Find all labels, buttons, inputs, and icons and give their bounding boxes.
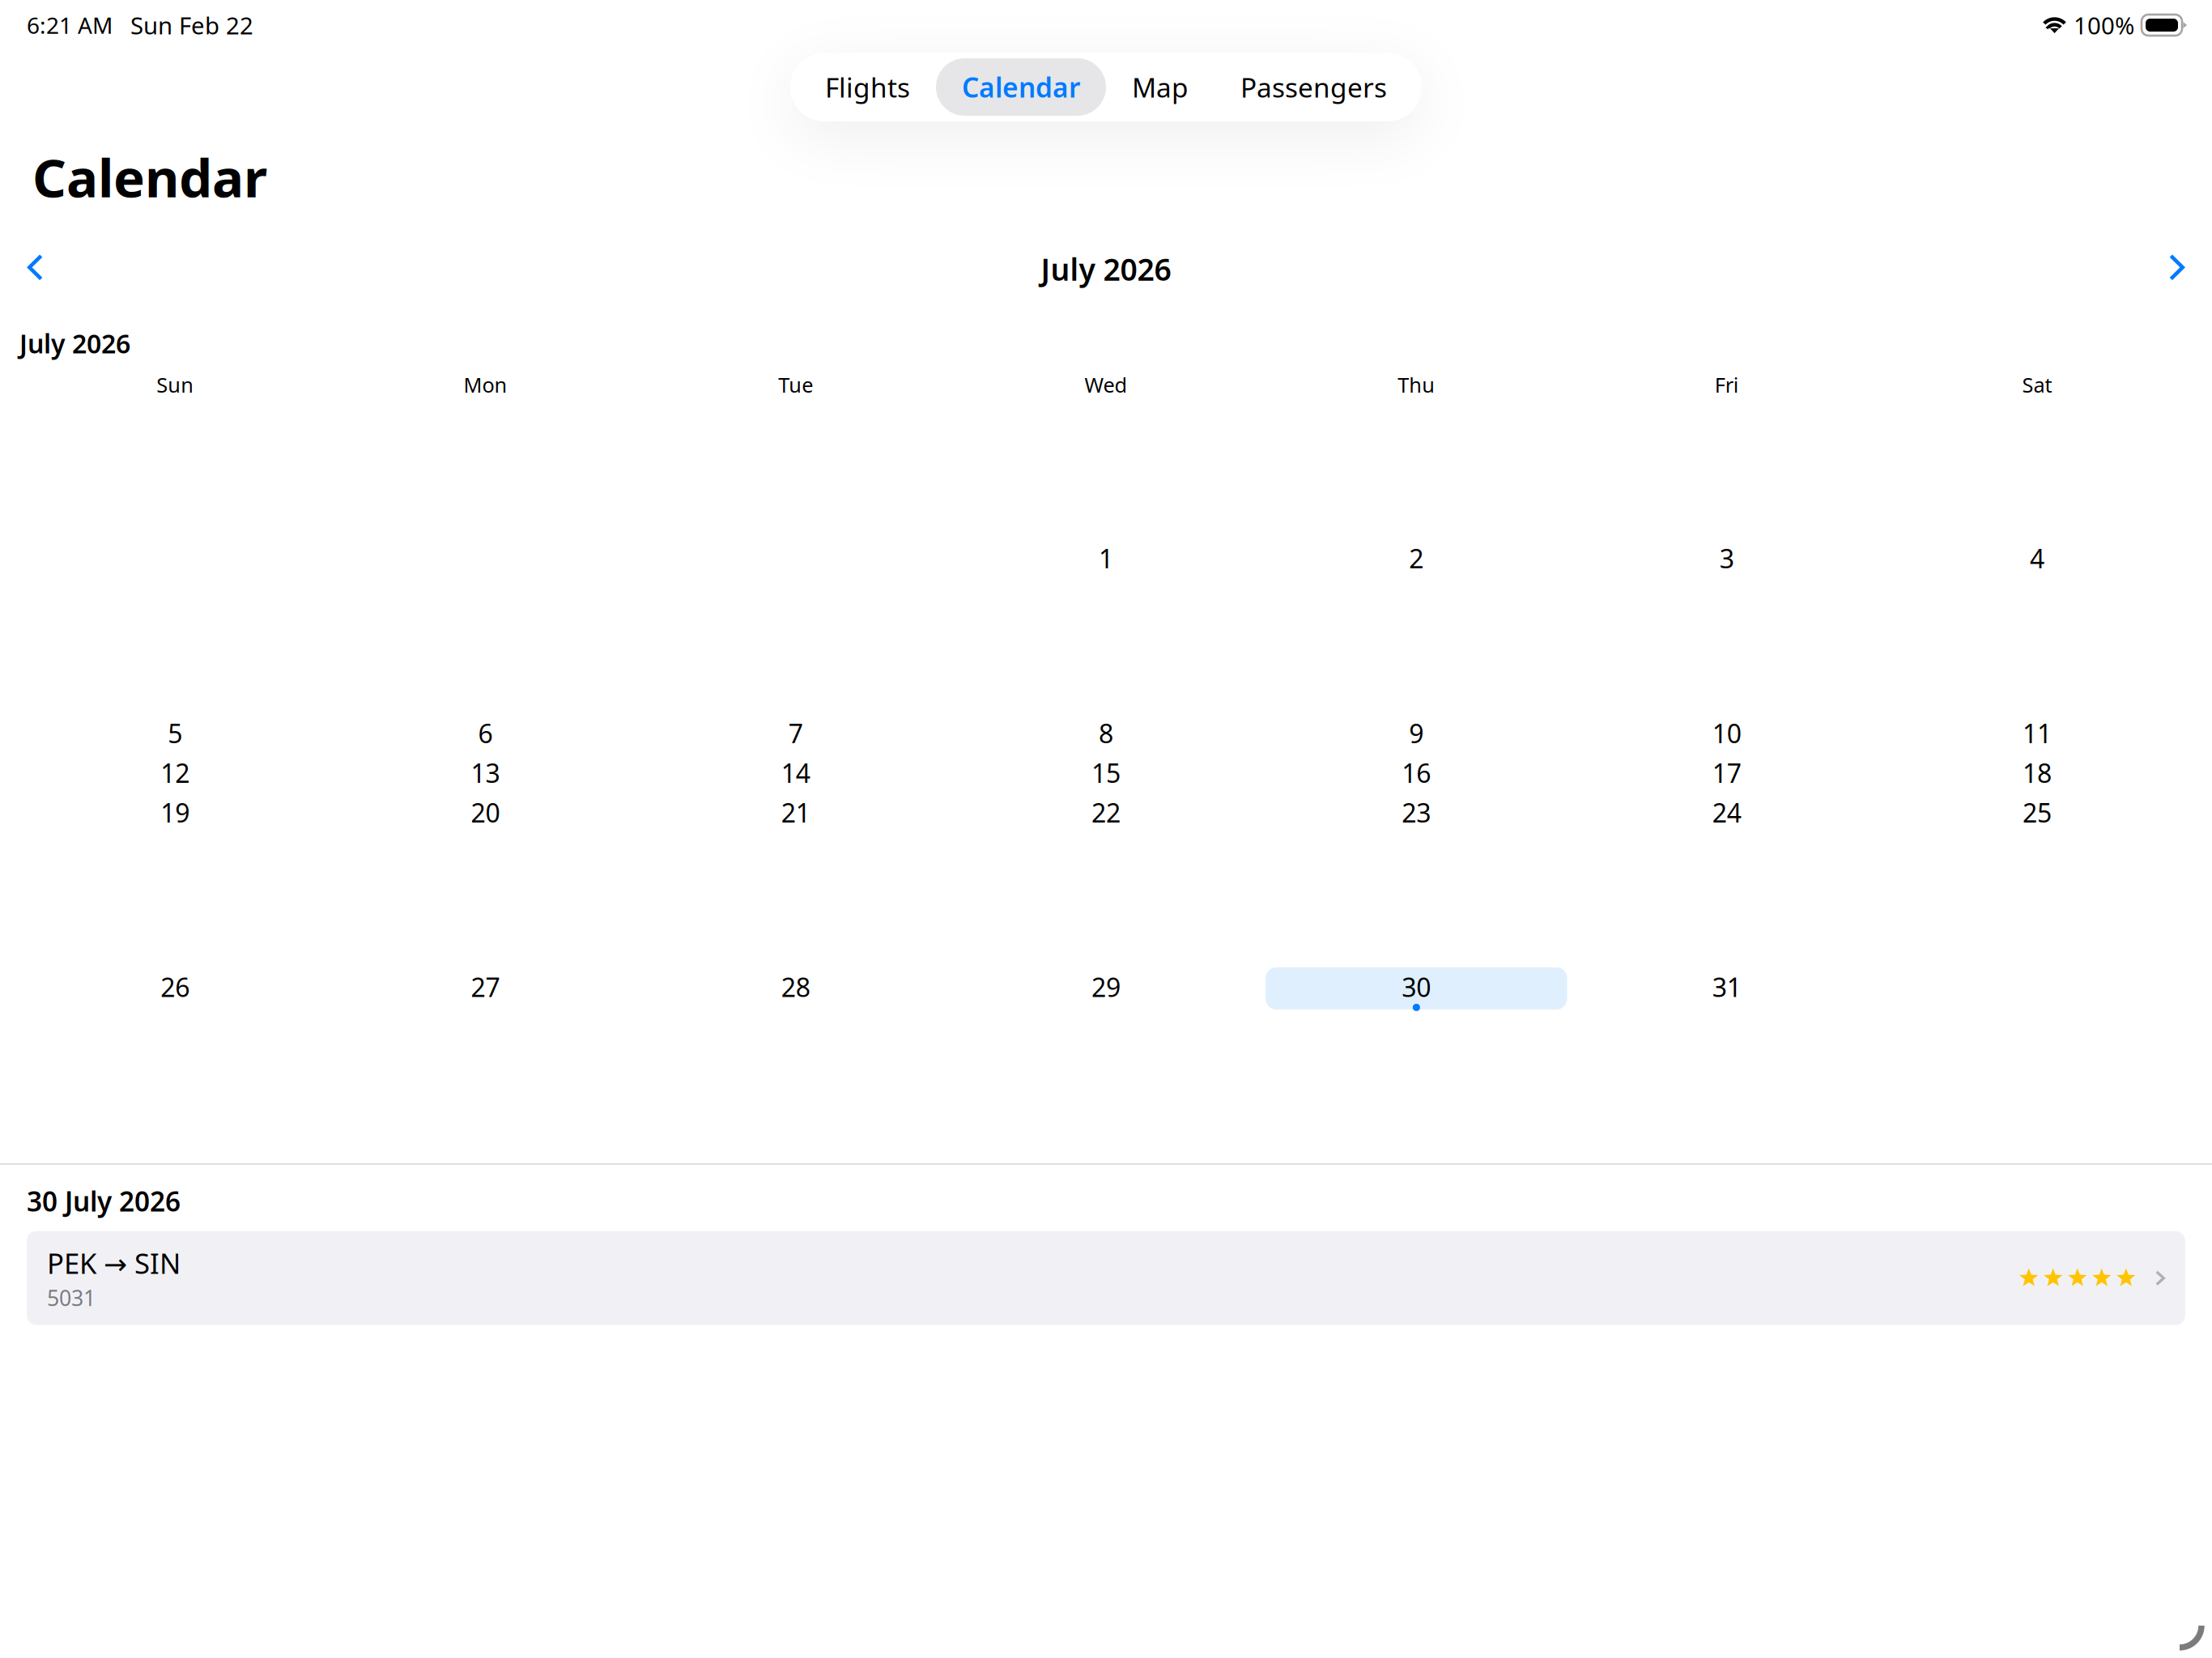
button[interactable]: 9 (1261, 714, 1572, 756)
button[interactable]: 15 (951, 753, 1261, 795)
button[interactable]: 12 (20, 753, 330, 795)
staticText: July 2026 (1041, 249, 1171, 289)
staticText: 1 (1099, 541, 1113, 576)
staticText: 6 (478, 716, 493, 750)
staticText: 15 (1092, 756, 1121, 790)
button[interactable]: 22 (951, 793, 1261, 835)
staticText: 24 (1712, 795, 1741, 830)
staticText: 20 (471, 795, 500, 830)
staticText: 30 (1402, 970, 1431, 1004)
staticText: Calendar (962, 69, 1080, 105)
staticText: 11 (2023, 716, 2052, 750)
button[interactable]: 20 (330, 793, 641, 835)
button[interactable]: 16 (1261, 753, 1572, 795)
staticText: 14 (781, 756, 810, 790)
staticText: 19 (160, 795, 190, 830)
button[interactable]: Passengers (1214, 58, 1413, 116)
button[interactable]: Previous month (7, 238, 63, 300)
button[interactable]: 19 (20, 793, 330, 835)
button[interactable]: 11 (1882, 714, 2192, 756)
button[interactable]: 27 (330, 967, 641, 1009)
staticText: 6:21 AM (27, 10, 113, 40)
staticText: 17 (1712, 756, 1741, 790)
button[interactable]: 18 (1882, 753, 2192, 795)
staticText: 28 (781, 970, 810, 1004)
button[interactable]: 30 (1261, 967, 1572, 1009)
button[interactable]: 3 (1572, 539, 1882, 581)
button[interactable]: 4 (1882, 539, 2192, 581)
staticText: 3 (1719, 541, 1734, 576)
button[interactable]: 5 (20, 714, 330, 756)
staticText: Fri (1715, 371, 1739, 398)
staticText: Tue (778, 371, 813, 398)
staticText: 10 (1712, 716, 1741, 750)
button[interactable]: 25 (1882, 793, 2192, 835)
button[interactable]: Calendar (936, 58, 1106, 116)
staticText: Flights (825, 69, 910, 105)
staticText: 9 (1409, 716, 1424, 750)
staticText: 30 July 2026 (27, 1183, 181, 1219)
button[interactable]: 21 (641, 793, 951, 835)
staticText: 25 (2023, 795, 2052, 830)
staticText: 8 (1099, 716, 1113, 750)
staticText: Map (1132, 69, 1189, 105)
button[interactable]: 29 (951, 967, 1261, 1009)
button[interactable]: 6 (330, 714, 641, 756)
button[interactable]: PEK → SIN (27, 1231, 2185, 1325)
button[interactable]: 28 (641, 967, 951, 1009)
button[interactable]: 26 (20, 967, 330, 1009)
button[interactable]: 10 (1572, 714, 1882, 756)
staticText: Thu (1398, 371, 1435, 398)
button[interactable]: 31 (1572, 967, 1882, 1009)
staticText: Passengers (1240, 69, 1387, 105)
staticText: 23 (1402, 795, 1431, 830)
staticText: 5 (168, 716, 182, 750)
button[interactable]: 7 (641, 714, 951, 756)
staticText: 5031 (47, 1283, 96, 1312)
staticText: Sun Feb 22 (130, 9, 253, 41)
staticText: 2 (1409, 541, 1424, 576)
staticText: 29 (1092, 970, 1121, 1004)
staticText: Calendar (32, 142, 267, 212)
button[interactable]: 2 (1261, 539, 1572, 581)
staticText: 7 (788, 716, 803, 750)
button[interactable]: 17 (1572, 753, 1882, 795)
staticText: July 2026 (19, 326, 130, 361)
button[interactable]: 23 (1261, 793, 1572, 835)
staticText: 100% (2074, 9, 2134, 41)
staticText: 18 (2023, 756, 2052, 790)
staticText: 21 (781, 795, 810, 830)
button[interactable]: 1 (951, 539, 1261, 581)
staticText: Wed (1085, 371, 1128, 398)
staticText: Sun (156, 371, 194, 398)
staticText: 13 (471, 756, 500, 790)
button[interactable]: 8 (951, 714, 1261, 756)
button[interactable]: Next month (2149, 238, 2205, 300)
staticText: Sat (2022, 371, 2052, 398)
staticText: 22 (1092, 795, 1121, 830)
staticText: 12 (160, 756, 190, 790)
button[interactable]: 14 (641, 753, 951, 795)
staticText: 27 (471, 970, 500, 1004)
staticText: 31 (1712, 970, 1741, 1004)
button[interactable]: 24 (1572, 793, 1882, 835)
staticText: 16 (1402, 756, 1431, 790)
staticText: PEK → SIN (47, 1244, 181, 1282)
staticText: 4 (2030, 541, 2044, 576)
button[interactable]: Flights (799, 58, 936, 116)
staticText: 26 (160, 970, 190, 1004)
button[interactable]: Map (1106, 58, 1214, 116)
button[interactable]: 13 (330, 753, 641, 795)
staticText: Mon (464, 371, 507, 398)
